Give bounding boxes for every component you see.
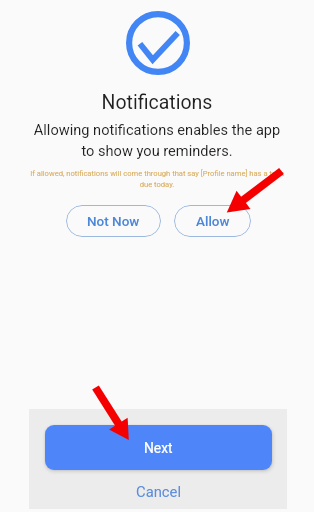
staticText: Allow: [196, 213, 230, 229]
staticText: Allowing notifications enables the app t…: [29, 121, 285, 159]
button[interactable]: Cancel: [45, 478, 272, 504]
button[interactable]: Next: [45, 425, 272, 470]
staticText: If allowed, notifications will come thro…: [28, 169, 286, 188]
button[interactable]: Not Now: [66, 205, 161, 237]
staticText: Notifications: [0, 91, 314, 114]
staticText: Not Now: [87, 213, 140, 229]
other: Notifications enabled: [126, 11, 190, 75]
staticText: Cancel: [136, 483, 182, 500]
button[interactable]: Allow: [174, 205, 251, 237]
staticText: Next: [144, 440, 173, 456]
